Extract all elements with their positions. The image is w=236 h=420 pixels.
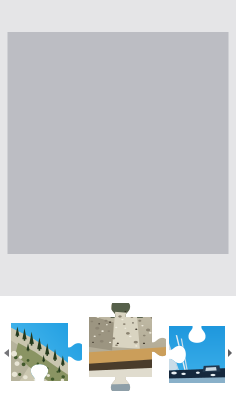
button[interactable]: Puzzle piece 2 <box>89 303 166 391</box>
button[interactable]: Puzzle piece 1 <box>11 323 82 381</box>
button[interactable]: More pieces <box>218 337 236 369</box>
button[interactable]: Previous pieces <box>0 337 19 369</box>
button[interactable]: Puzzle piece 3 <box>169 326 225 383</box>
